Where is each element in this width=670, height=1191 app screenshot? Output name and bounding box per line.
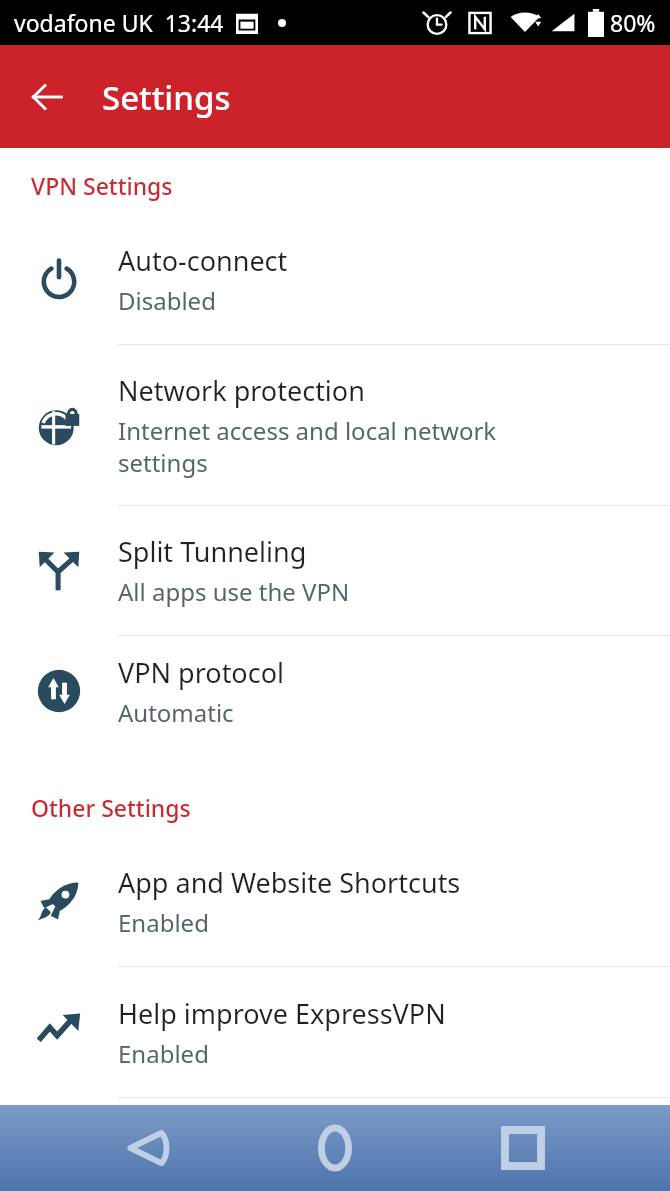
button[interactable]: Back xyxy=(18,68,76,126)
button[interactable]: Auto-connect xyxy=(0,214,670,345)
button[interactable]: Network protection xyxy=(0,345,670,506)
staticText: Settings xyxy=(102,75,231,120)
staticText: 80% xyxy=(610,7,656,38)
staticText: Split Tunneling xyxy=(118,533,307,570)
staticText: VPN protocol xyxy=(118,654,284,691)
staticText: vodafone UK 13:44 xyxy=(14,7,224,38)
staticText: Automatic xyxy=(118,696,234,729)
button[interactable]: VPN protocol xyxy=(0,636,670,746)
staticText: VPN Settings xyxy=(31,170,173,201)
staticText: Help improve ExpressVPN xyxy=(118,995,446,1032)
button[interactable]: Back xyxy=(108,1108,188,1188)
staticText: Internet access and local network settin… xyxy=(118,414,497,479)
button[interactable]: Help improve ExpressVPN xyxy=(0,967,670,1098)
staticText: Network protection xyxy=(118,372,365,409)
staticText: Disabled xyxy=(118,284,216,317)
button[interactable]: Split Tunneling xyxy=(0,506,670,636)
staticText: Auto-connect xyxy=(118,242,288,279)
staticText: Enabled xyxy=(118,1037,209,1070)
staticText: App and Website Shortcuts xyxy=(118,864,461,901)
staticText: Enabled xyxy=(118,906,209,939)
staticText: Other Settings xyxy=(31,792,191,823)
staticText: All apps use the VPN xyxy=(118,575,350,608)
button[interactable]: Home xyxy=(295,1108,375,1188)
button[interactable]: Recent apps xyxy=(483,1108,563,1188)
button[interactable]: App and Website Shortcuts xyxy=(0,836,670,967)
